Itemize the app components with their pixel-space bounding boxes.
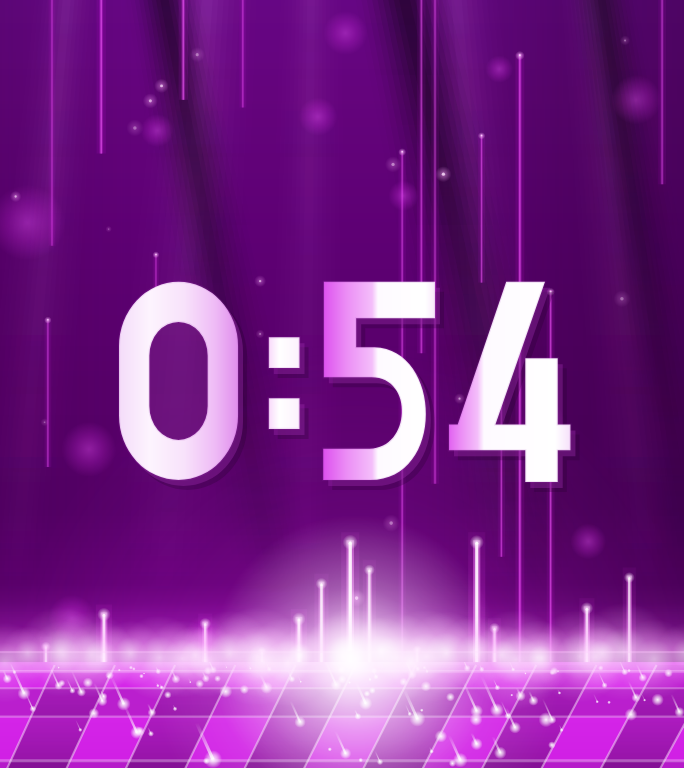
button[interactable]: Countdown timer 0:54, tap to pause	[0, 0, 684, 768]
